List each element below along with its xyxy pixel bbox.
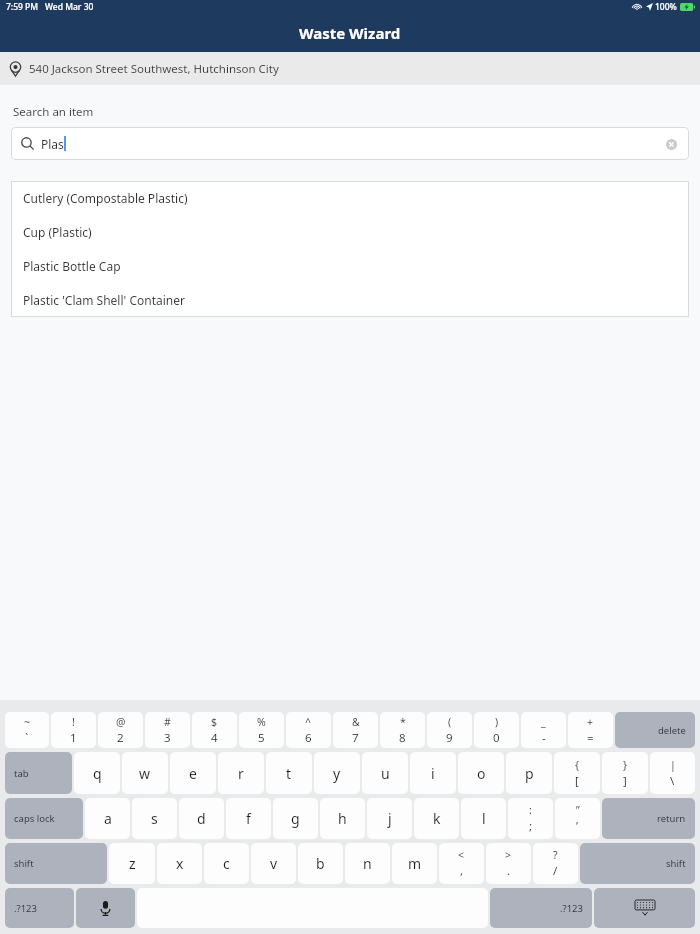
staticText: q	[93, 764, 102, 783]
button[interactable]: @	[98, 712, 143, 748]
button[interactable]: $	[192, 712, 237, 748]
button[interactable]: :	[508, 798, 553, 839]
button[interactable]: ”	[555, 798, 600, 839]
button[interactable]: delete	[615, 712, 695, 748]
staticText: ^	[305, 715, 312, 729]
button[interactable]: p	[506, 752, 552, 794]
button[interactable]: |	[650, 752, 695, 794]
button[interactable]: Plas	[11, 127, 689, 160]
button[interactable]: j	[367, 798, 412, 839]
button[interactable]: Clear text	[663, 136, 679, 152]
button[interactable]: b	[298, 843, 343, 884]
button[interactable]: f	[226, 798, 271, 839]
button[interactable]: <	[439, 843, 484, 884]
staticText: ?	[553, 848, 558, 862]
button[interactable]: ?	[533, 843, 578, 884]
staticText: g	[291, 809, 300, 828]
staticText: p	[525, 764, 534, 783]
button[interactable]: (	[427, 712, 472, 748]
button[interactable]: r	[218, 752, 264, 794]
button[interactable]: ~	[5, 712, 49, 748]
button[interactable]: ^	[286, 712, 331, 748]
button[interactable]: Dictation	[76, 888, 135, 928]
staticText: _	[541, 715, 546, 729]
staticText: 9	[446, 730, 453, 746]
button[interactable]: #	[145, 712, 190, 748]
staticText: 4	[211, 730, 218, 746]
button[interactable]: n	[345, 843, 390, 884]
button[interactable]: >	[486, 843, 531, 884]
button[interactable]: w	[122, 752, 168, 794]
button[interactable]: v	[251, 843, 296, 884]
button[interactable]: return	[602, 798, 695, 839]
button[interactable]: .?123	[490, 888, 592, 928]
staticText: ”	[576, 803, 580, 817]
staticText: \	[670, 773, 675, 789]
button[interactable]: caps lock	[5, 798, 83, 839]
staticText: -	[542, 730, 546, 746]
button[interactable]: t	[266, 752, 312, 794]
staticText: :	[529, 803, 532, 817]
button[interactable]: a	[85, 798, 130, 839]
button[interactable]: Plastic 'Clam Shell' Container	[11, 283, 689, 317]
button[interactable]: z	[109, 843, 155, 884]
staticText: d	[197, 809, 206, 828]
button[interactable]: !	[51, 712, 96, 748]
button[interactable]: h	[320, 798, 365, 839]
staticText: 540 Jackson Street Southwest, Hutchinson…	[29, 61, 279, 77]
staticText: Plastic 'Clam Shell' Container	[23, 292, 185, 308]
button[interactable]: *	[380, 712, 425, 748]
staticText: Wed Mar 30	[45, 1, 94, 13]
staticText: u	[381, 764, 390, 783]
staticText: 8	[399, 730, 406, 746]
staticText: .?123	[14, 902, 37, 915]
button[interactable]: y	[314, 752, 360, 794]
staticText: r	[238, 764, 244, 783]
button[interactable]: +	[568, 712, 613, 748]
button[interactable]: l	[461, 798, 506, 839]
button[interactable]: Cutlery (Compostable Plastic)	[11, 181, 689, 215]
button[interactable]: q	[74, 752, 120, 794]
button[interactable]: _	[521, 712, 566, 748]
button[interactable]: tab	[5, 752, 72, 794]
button[interactable]: }	[602, 752, 648, 794]
button[interactable]: &	[333, 712, 378, 748]
staticText: shift	[666, 857, 686, 870]
button[interactable]: i	[410, 752, 456, 794]
button[interactable]: .?123	[5, 888, 74, 928]
button[interactable]: o	[458, 752, 504, 794]
button[interactable]: d	[179, 798, 224, 839]
staticText: return	[657, 812, 686, 825]
button[interactable]: k	[414, 798, 459, 839]
staticText: k	[433, 809, 441, 828]
button[interactable]: g	[273, 798, 318, 839]
staticText: Cup (Plastic)	[23, 224, 92, 240]
button[interactable]: {	[554, 752, 600, 794]
staticText: s	[151, 809, 158, 828]
staticText: z	[129, 854, 136, 873]
button[interactable]: s	[132, 798, 177, 839]
button[interactable]: 540 Jackson Street Southwest, Hutchinson…	[0, 52, 700, 85]
button[interactable]: )	[474, 712, 519, 748]
staticText: x	[176, 854, 184, 873]
button[interactable]: shift	[580, 843, 695, 884]
button[interactable]: c	[204, 843, 249, 884]
staticText: 6	[305, 730, 312, 746]
button[interactable]: Cup (Plastic)	[11, 215, 689, 249]
staticText: #	[164, 715, 171, 729]
button[interactable]: shift	[5, 843, 107, 884]
button[interactable]: e	[170, 752, 216, 794]
button[interactable]: Plastic Bottle Cap	[11, 249, 689, 283]
staticText: @	[116, 715, 126, 729]
button[interactable]: x	[157, 843, 202, 884]
button[interactable]: u	[362, 752, 408, 794]
staticText: }	[623, 758, 627, 772]
staticText: Search an item	[13, 104, 94, 120]
button[interactable]: m	[392, 843, 437, 884]
staticText: .?123	[560, 902, 583, 915]
staticText: c	[223, 854, 230, 873]
button[interactable]: Hide keyboard	[594, 888, 695, 928]
button[interactable]: %	[239, 712, 284, 748]
staticText: *	[400, 715, 406, 729]
